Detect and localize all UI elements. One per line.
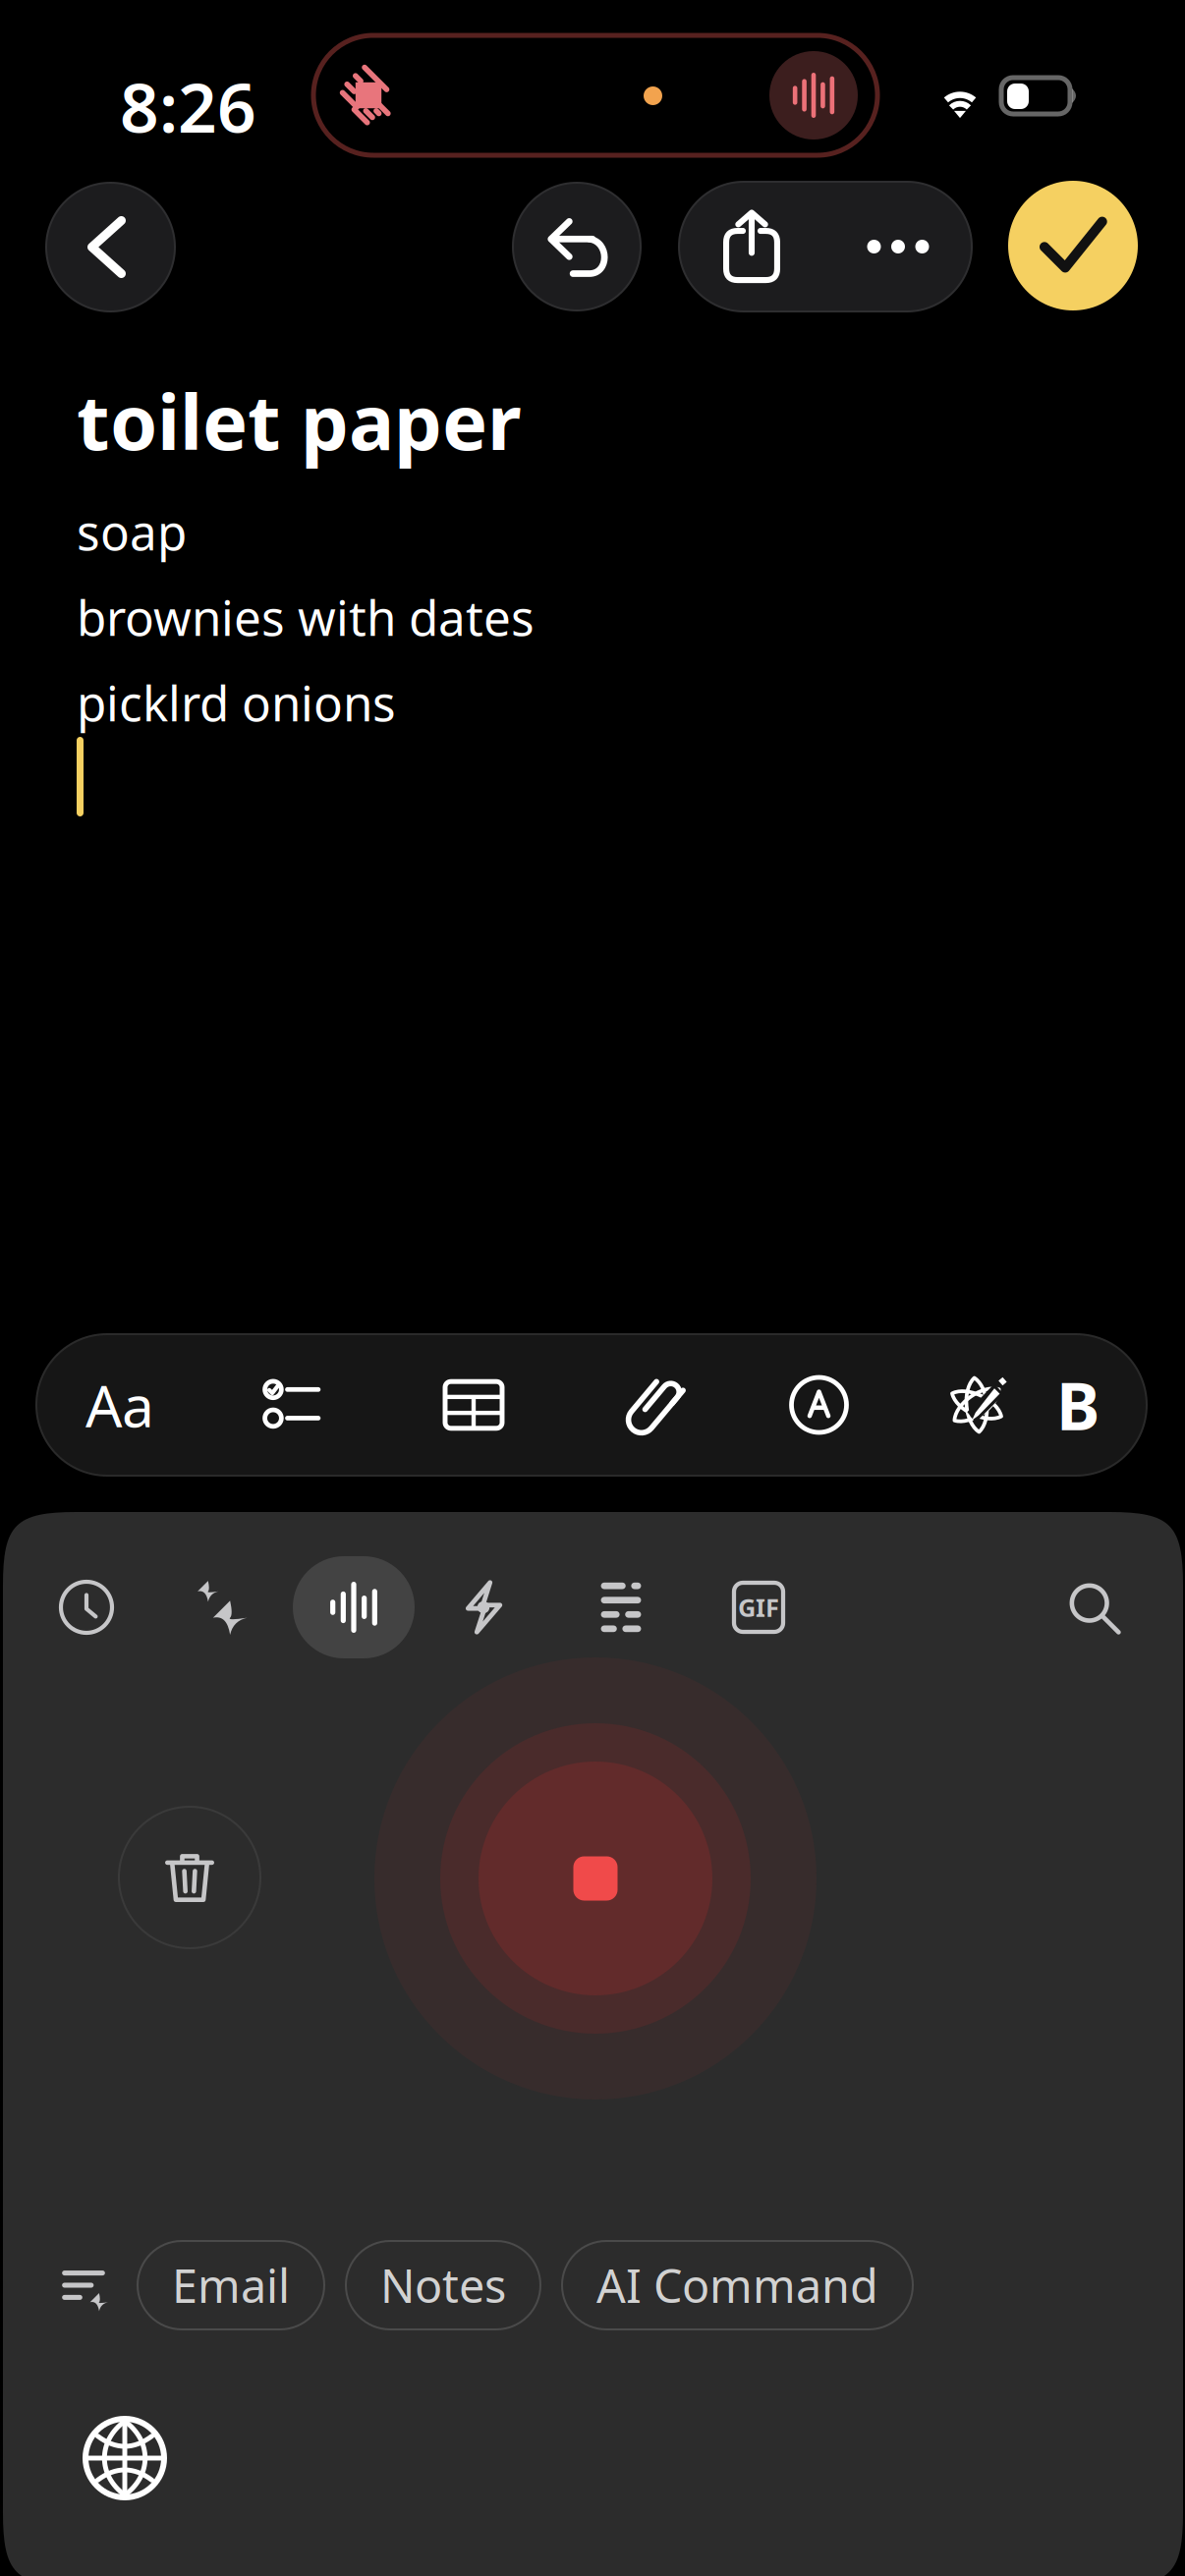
- staticText: soap: [77, 499, 187, 564]
- button[interactable]: Text: [552, 1553, 690, 1661]
- button[interactable]: Done: [1008, 181, 1138, 310]
- staticText: Email: [172, 2255, 290, 2316]
- button[interactable]: Delete recording: [119, 1807, 260, 1948]
- button[interactable]: Checklist: [203, 1334, 380, 1476]
- button[interactable]: Email: [138, 2241, 324, 2329]
- button[interactable]: Text style: [36, 1334, 203, 1476]
- button[interactable]: GIF: [690, 1553, 827, 1661]
- staticText: Notes: [380, 2255, 506, 2316]
- button[interactable]: Bold: [1056, 1334, 1147, 1476]
- button[interactable]: AI: [155, 1553, 293, 1661]
- button[interactable]: Undo: [513, 183, 641, 310]
- button[interactable]: Recent: [18, 1553, 155, 1661]
- staticText: GIF: [738, 1591, 779, 1624]
- staticText: B: [1056, 1361, 1100, 1448]
- button[interactable]: Share: [679, 182, 824, 311]
- button[interactable]: Voice: [293, 1556, 415, 1658]
- button[interactable]: Attach: [567, 1334, 741, 1476]
- button[interactable]: Change keyboard: [71, 2404, 179, 2512]
- staticText: picklrd onions: [77, 670, 396, 735]
- button[interactable]: Table: [380, 1334, 567, 1476]
- button[interactable]: AI assist: [897, 1334, 1056, 1476]
- button[interactable]: Search: [1025, 1553, 1162, 1661]
- button[interactable]: Stop recording: [374, 1657, 817, 2100]
- staticText: toilet paper: [77, 370, 522, 471]
- button[interactable]: More: [824, 182, 972, 311]
- button[interactable]: Draw: [741, 1334, 897, 1476]
- button[interactable]: Suggestions: [51, 2253, 116, 2318]
- staticText: Aa: [85, 1367, 154, 1443]
- staticText: 8:26: [120, 61, 256, 151]
- button[interactable]: Notes: [346, 2241, 540, 2329]
- staticText: AI Command: [596, 2255, 878, 2316]
- button[interactable]: AI Command: [562, 2241, 913, 2329]
- button[interactable]: Shortcuts: [415, 1553, 552, 1661]
- button[interactable]: Back: [46, 183, 175, 311]
- staticText: brownies with dates: [77, 585, 535, 649]
